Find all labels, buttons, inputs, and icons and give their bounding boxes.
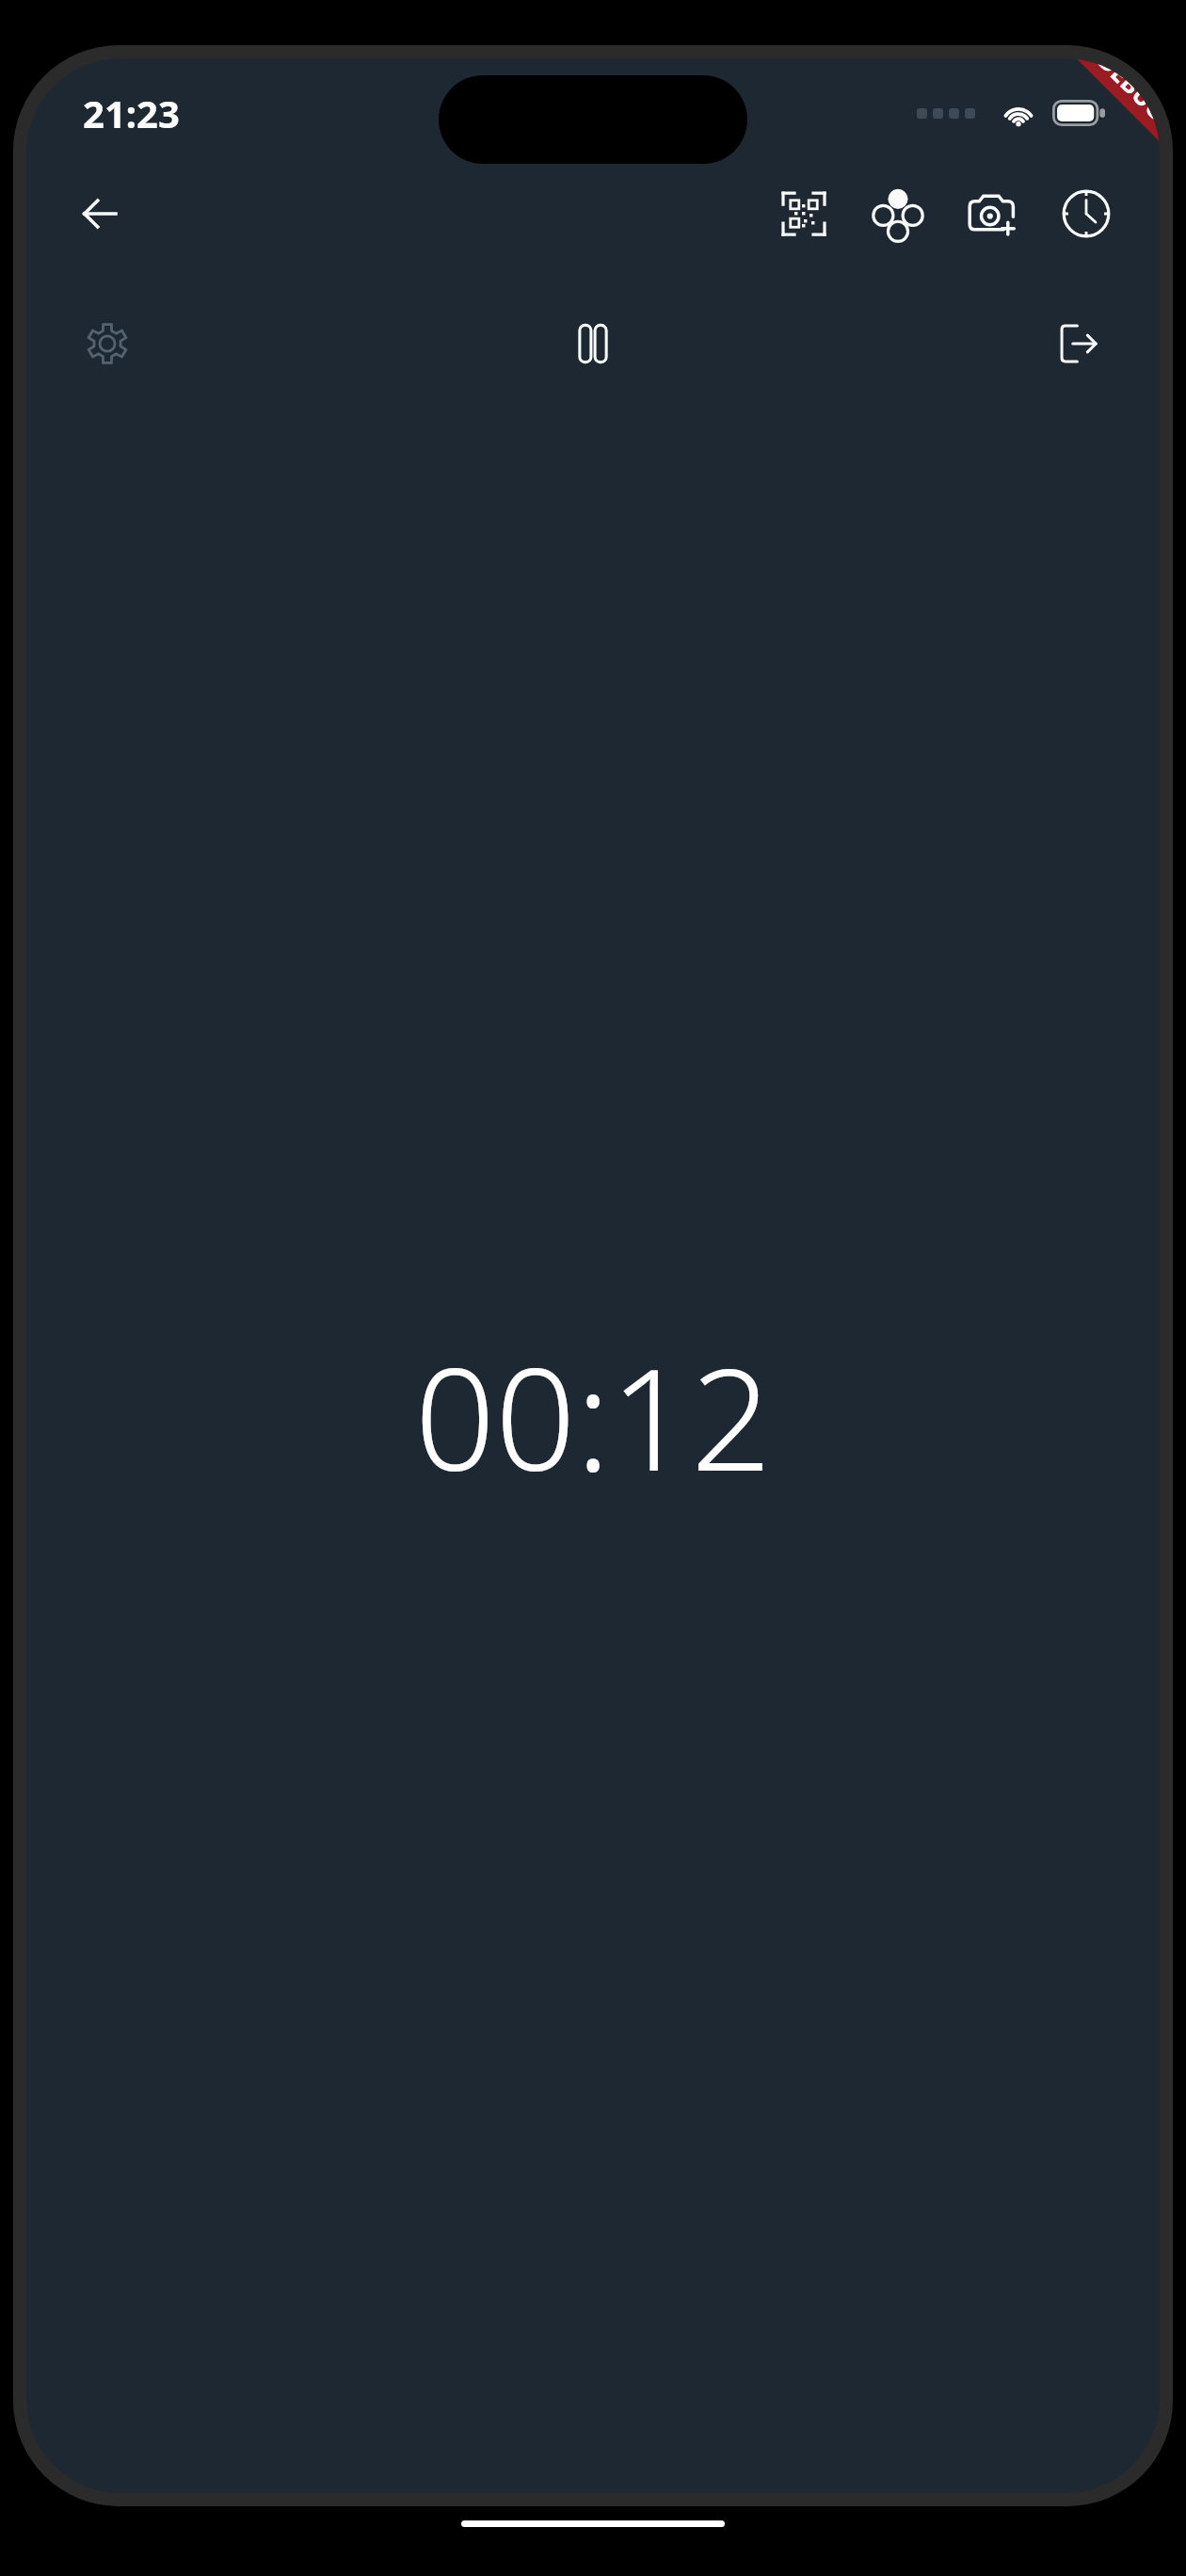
staticText: 21:23 [83, 88, 180, 138]
button[interactable]: Settings [60, 297, 154, 391]
button[interactable]: Back [55, 169, 145, 259]
button[interactable]: Pause [546, 297, 640, 391]
button[interactable]: Groups [853, 169, 943, 259]
staticText: DEBUG [1091, 58, 1160, 127]
staticText: 00:12 [414, 1320, 772, 1512]
button[interactable]: Exit [1032, 297, 1126, 391]
button[interactable]: Scan QR code [759, 169, 849, 259]
button[interactable]: History [1041, 169, 1131, 259]
button[interactable]: Add photo [947, 169, 1037, 259]
